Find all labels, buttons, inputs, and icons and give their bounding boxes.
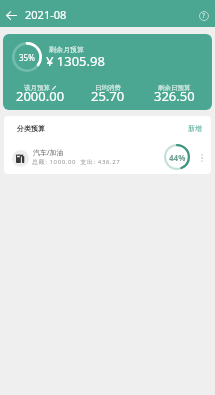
staticText: 44% [169, 152, 186, 163]
staticText: 该月预算 [24, 84, 50, 92]
staticText: ¥ 1305.98 [46, 52, 105, 70]
staticText: 日均消费 [95, 84, 121, 92]
staticText: 326.50 [154, 87, 195, 105]
button[interactable]: Help [195, 7, 213, 25]
staticText: 新增 [188, 124, 202, 133]
staticText: 剩余月预算 [49, 45, 84, 54]
staticText: 2021-08 [25, 7, 67, 22]
button[interactable]: More options [193, 149, 211, 167]
button[interactable]: Back [3, 7, 20, 24]
staticText: 25.70 [91, 87, 125, 105]
staticText: 2000.00 [16, 87, 65, 105]
staticText: 总额: 1000.00 支出: 436.27 [32, 158, 121, 166]
staticText: 35% [19, 52, 35, 63]
button[interactable]: 汽车/加油 [4, 140, 211, 174]
staticText: ? [202, 11, 206, 21]
staticText: 汽车/加油 [33, 148, 64, 158]
staticText: 分类预算 [17, 124, 45, 133]
staticText: 剩余日预算 [158, 84, 191, 92]
button[interactable]: 新增 [179, 118, 211, 138]
